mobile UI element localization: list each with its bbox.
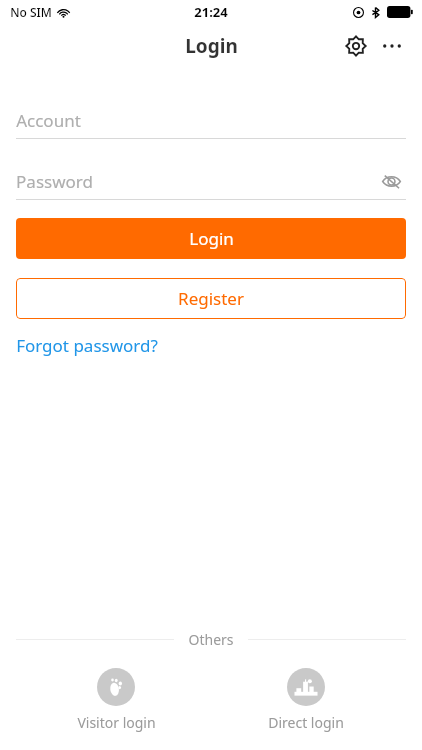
button[interactable]: Forgot password?	[16, 334, 158, 357]
button[interactable]: Show password	[376, 167, 406, 195]
staticText: Login	[189, 227, 234, 250]
staticText: Forgot password?	[16, 334, 158, 357]
staticText: Others	[188, 630, 234, 649]
staticText: Login	[185, 33, 238, 59]
staticText: Visitor login	[77, 713, 156, 732]
staticText: Register	[178, 287, 244, 310]
button[interactable]: More options	[374, 28, 410, 64]
button[interactable]: Direct login	[231, 666, 381, 734]
button[interactable]: Account	[16, 106, 406, 139]
staticText: 21:24	[194, 3, 228, 21]
button[interactable]: Settings	[338, 28, 374, 64]
button[interactable]: Visitor login	[41, 666, 191, 734]
staticText: Account	[16, 109, 81, 132]
button[interactable]: Register	[16, 278, 406, 319]
staticText: Direct login	[268, 713, 344, 732]
button[interactable]: Login	[16, 218, 406, 259]
staticText: No SIM	[10, 4, 52, 20]
staticText: Password	[16, 170, 93, 193]
